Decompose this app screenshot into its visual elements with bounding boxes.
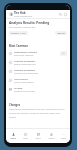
- staticText: The Hub: [14, 11, 26, 15]
- button[interactable]: More: [57, 133, 69, 140]
- staticText: Alerts: [35, 137, 41, 140]
- button[interactable]: Timeout Exceeded: [9, 58, 67, 67]
- button[interactable]: Home: [7, 133, 19, 140]
- staticText: Access token expired: [14, 81, 34, 84]
- staticText: Stack trace captured: [14, 54, 34, 57]
- button[interactable]: Teams: [45, 133, 57, 140]
- staticText: Changes: [9, 103, 21, 107]
- button[interactable]: Auth Failure: [9, 76, 67, 85]
- staticText: These results are preliminary and may ch…: [9, 108, 67, 118]
- button[interactable]: Search: [58, 12, 63, 17]
- staticText: Analysis Results: Pending: [9, 21, 50, 25]
- button[interactable]: View log: [55, 31, 67, 35]
- staticText: Archive: [14, 86, 23, 89]
- staticText: Queued · 3 min: [11, 32, 26, 34]
- staticText: Timeout Exceeded: [14, 68, 35, 71]
- staticText: Last updated 2 minutes ago: [9, 26, 36, 29]
- staticText: Auth Failure: [14, 77, 28, 80]
- staticText: 12: [62, 52, 65, 55]
- staticText: Home: [10, 137, 16, 140]
- button[interactable]: Application Crashed: [9, 49, 67, 58]
- button[interactable]: Timeout Exceeded: [9, 67, 67, 76]
- staticText: Most Common: [9, 44, 28, 48]
- staticText: Moved to cold storage: [14, 90, 35, 93]
- staticText: Application Crashed: [14, 50, 37, 53]
- button[interactable]: Archive: [9, 85, 67, 94]
- button[interactable]: Runs: [19, 133, 31, 140]
- button[interactable]: Profile: [63, 12, 68, 17]
- button[interactable]: Queued · 3 min: [9, 31, 28, 35]
- staticText: View log: [57, 32, 65, 34]
- staticText: Runs: [23, 137, 28, 140]
- staticText: Request exceeded limit: [14, 63, 36, 66]
- staticText: Teams: [48, 137, 55, 140]
- staticText: Timeout Exceeded: [14, 59, 35, 62]
- staticText: More: [61, 137, 66, 140]
- staticText: acme.example.com: [14, 15, 33, 18]
- button[interactable]: Alerts: [32, 133, 44, 140]
- staticText: Upstream not responding: [14, 72, 39, 75]
